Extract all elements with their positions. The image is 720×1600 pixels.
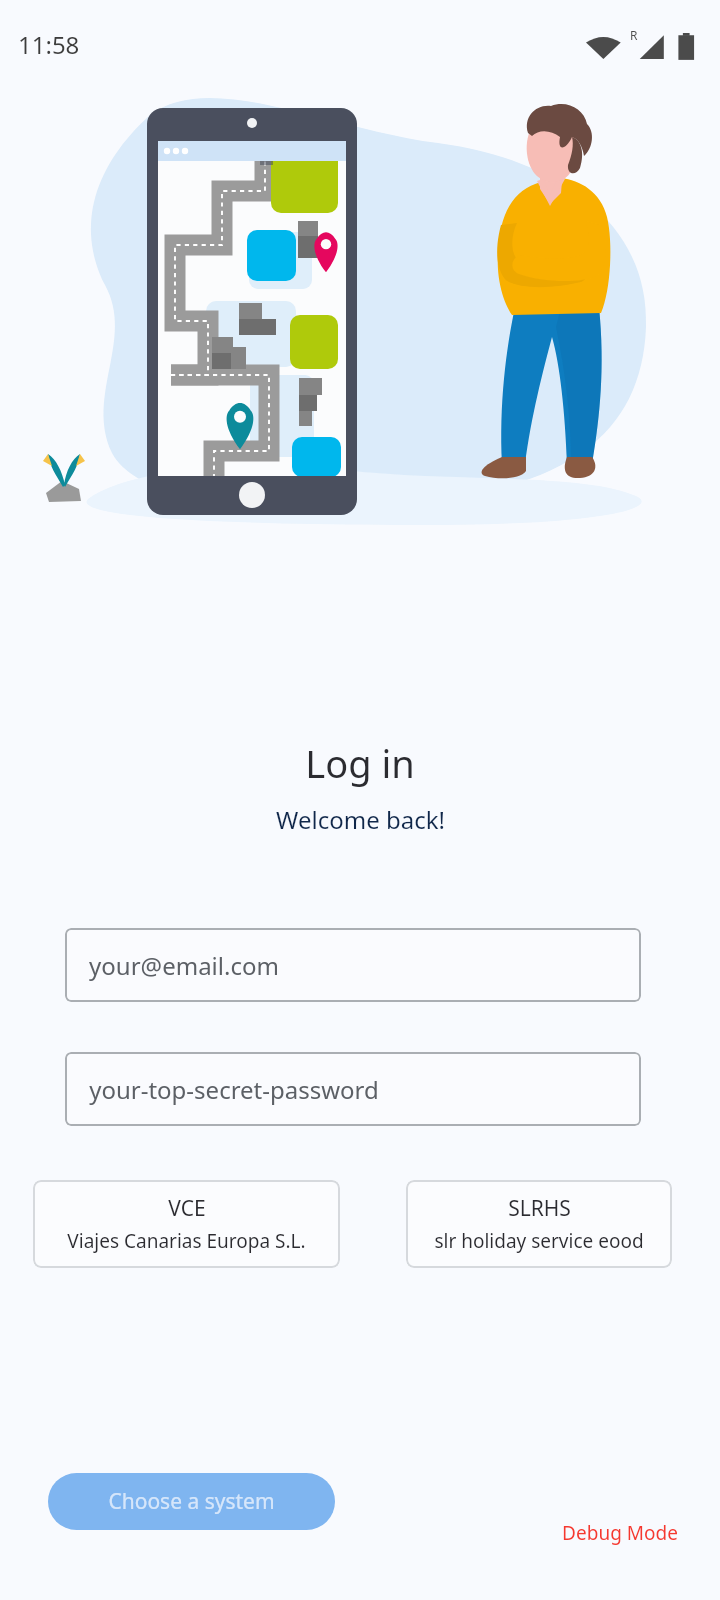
- staticText: VCE: [168, 1194, 206, 1223]
- staticText: Viajes Canarias Europa S.L.: [67, 1228, 306, 1254]
- staticText: SLRHS: [508, 1194, 571, 1223]
- staticText: your-top-secret-password: [89, 1073, 379, 1106]
- staticText: Debug Mode: [562, 1520, 678, 1546]
- staticText: Log in: [305, 737, 415, 789]
- staticText: your@email.com: [89, 949, 279, 982]
- button[interactable]: VCE: [33, 1180, 340, 1268]
- button[interactable]: Debug Mode: [545, 1512, 695, 1554]
- staticText: Choose a system: [108, 1487, 275, 1516]
- staticText: Welcome back!: [276, 803, 445, 836]
- button[interactable]: your@email.com: [65, 928, 641, 1002]
- staticText: 11:58: [18, 28, 80, 61]
- staticText: slr holiday service eood: [434, 1228, 644, 1254]
- button[interactable]: your-top-secret-password: [65, 1052, 641, 1126]
- other: Status icons: [586, 33, 700, 61]
- button[interactable]: Choose a system: [48, 1473, 335, 1530]
- staticText: R: [630, 27, 638, 43]
- button[interactable]: SLRHS: [406, 1180, 672, 1268]
